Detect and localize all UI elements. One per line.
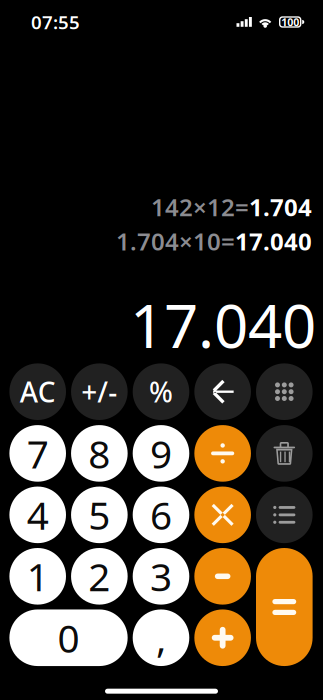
button[interactable]: +/- [71, 363, 128, 420]
button[interactable]: , [133, 609, 189, 666]
button[interactable]: Add [194, 609, 251, 666]
staticText: 8 [88, 428, 110, 479]
staticText: 4 [27, 489, 49, 540]
button[interactable]: Divide [194, 425, 251, 482]
button[interactable]: % [133, 363, 189, 420]
button[interactable]: 9 [133, 425, 189, 482]
button[interactable]: Clear history [256, 425, 313, 482]
staticText: 0 [57, 612, 79, 663]
staticText: 7 [27, 428, 49, 479]
button[interactable]: AC [9, 363, 66, 420]
button[interactable]: More options [256, 363, 313, 420]
staticText: 17.040 [235, 225, 312, 257]
staticText: 9 [150, 428, 172, 479]
staticText: 07:55 [31, 10, 80, 34]
staticText: 1 [27, 551, 49, 602]
button[interactable]: Multiply [194, 487, 251, 543]
staticText: AC [20, 373, 56, 410]
button[interactable]: 2 [71, 548, 128, 605]
staticText: 2 [88, 551, 110, 602]
staticText: % [149, 373, 173, 410]
staticText: 17.040 [130, 285, 316, 365]
button[interactable]: 1 [9, 548, 66, 605]
button[interactable]: 6 [133, 487, 189, 543]
staticText: +/- [81, 373, 117, 410]
button[interactable]: 3 [133, 548, 189, 605]
button[interactable]: 7 [9, 425, 66, 482]
button[interactable]: 0 [9, 609, 128, 666]
button[interactable]: Backspace [194, 363, 251, 420]
button[interactable]: 5 [71, 487, 128, 543]
staticText: 5 [88, 489, 110, 540]
button[interactable]: Subtract [194, 548, 251, 605]
button[interactable]: Equals [256, 548, 313, 666]
button[interactable]: History [256, 487, 313, 543]
staticText: 142×12= [151, 191, 249, 223]
staticText: 1.704×10= [116, 225, 235, 257]
staticText: 100 [281, 15, 299, 29]
staticText: 3 [150, 551, 172, 602]
button[interactable]: 4 [9, 487, 66, 543]
staticText: 6 [150, 489, 172, 540]
button[interactable]: 8 [71, 425, 128, 482]
staticText: 1.704 [249, 191, 312, 223]
staticText: , [156, 612, 166, 663]
